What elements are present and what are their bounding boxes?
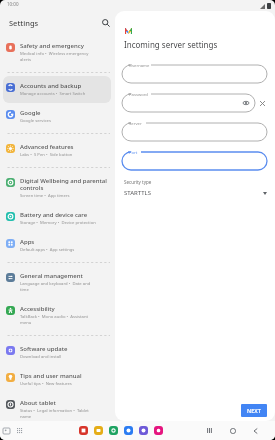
button[interactable]: Display mode	[2, 426, 11, 435]
button[interactable]: NEXT	[241, 404, 267, 417]
staticText: Password	[129, 92, 148, 98]
button[interactable]: App 1	[94, 426, 103, 435]
button[interactable]: Safety and emergency	[3, 36, 111, 69]
button[interactable]: Back	[250, 425, 261, 436]
staticText: Google	[20, 109, 41, 117]
staticText: Labs • S Pen • Side button	[20, 152, 73, 158]
button[interactable]: Software update	[3, 339, 111, 366]
button[interactable]: Tips and user manual	[3, 366, 111, 393]
staticText: TalkBack • Mono audio • Assistant menu	[20, 314, 89, 326]
staticText: Language and keyboard • Date and time	[20, 281, 91, 293]
staticText: Download and install	[20, 354, 62, 360]
staticText: Accessibility	[20, 305, 55, 313]
staticText: Battery and device care	[20, 211, 88, 219]
button[interactable]: About tablet	[3, 393, 111, 426]
button[interactable]: Battery and device care	[3, 205, 111, 232]
button[interactable]: Accounts and backup	[3, 76, 111, 103]
button[interactable]: App 4	[139, 426, 148, 435]
staticText: Settings	[9, 18, 39, 28]
staticText: Security type	[124, 179, 152, 185]
staticText: Server	[129, 121, 142, 127]
button[interactable]: Search	[100, 17, 112, 29]
staticText: General management	[20, 272, 83, 280]
button[interactable]: App 3	[124, 426, 133, 435]
staticText: About tablet	[20, 399, 56, 407]
staticText: Incoming server settings	[124, 39, 218, 50]
staticText: Port	[129, 150, 138, 156]
button[interactable]: Clear	[257, 98, 267, 108]
staticText: Screen time • App timers	[20, 193, 70, 199]
staticText: Medical info • Wireless emergency alerts	[20, 51, 89, 63]
staticText: Manage accounts • Smart Switch	[20, 91, 86, 97]
button[interactable]: All apps	[15, 426, 24, 435]
button[interactable]: Accessibility	[3, 299, 111, 332]
button[interactable]: Apps	[3, 232, 111, 259]
staticText: Software update	[20, 345, 68, 353]
button[interactable]: Recents	[204, 425, 215, 436]
staticText: STARTTLS	[124, 189, 152, 197]
button[interactable]: Home	[227, 425, 238, 436]
staticText: Status • Legal information • Tablet name	[20, 408, 89, 420]
button[interactable]: Google	[3, 103, 111, 130]
staticText: Advanced features	[20, 143, 74, 151]
staticText: Digital Wellbeing and parental controls	[20, 177, 107, 192]
staticText: Accounts and backup	[20, 82, 82, 90]
staticText: Default apps • App settings	[20, 247, 75, 253]
button[interactable]: App 0	[79, 426, 88, 435]
staticText: Useful tips • New features	[20, 381, 72, 387]
button[interactable]: Advanced features	[3, 137, 111, 164]
button[interactable]: General management	[3, 266, 111, 299]
button[interactable]: App 5	[154, 426, 163, 435]
button[interactable]: App 2	[109, 426, 118, 435]
button[interactable]: Show password	[242, 99, 250, 107]
staticText: Apps	[20, 238, 35, 246]
staticText: Safety and emergency	[20, 42, 84, 50]
staticText: 10:00	[7, 1, 19, 7]
staticText: Tips and user manual	[20, 372, 82, 380]
staticText: Storage • Memory • Device protection	[20, 220, 96, 226]
staticText: Google services	[20, 118, 51, 124]
staticText: Username	[129, 63, 150, 69]
staticText: NEXT	[247, 407, 261, 414]
button[interactable]: Digital Wellbeing and parental controls	[3, 171, 111, 205]
